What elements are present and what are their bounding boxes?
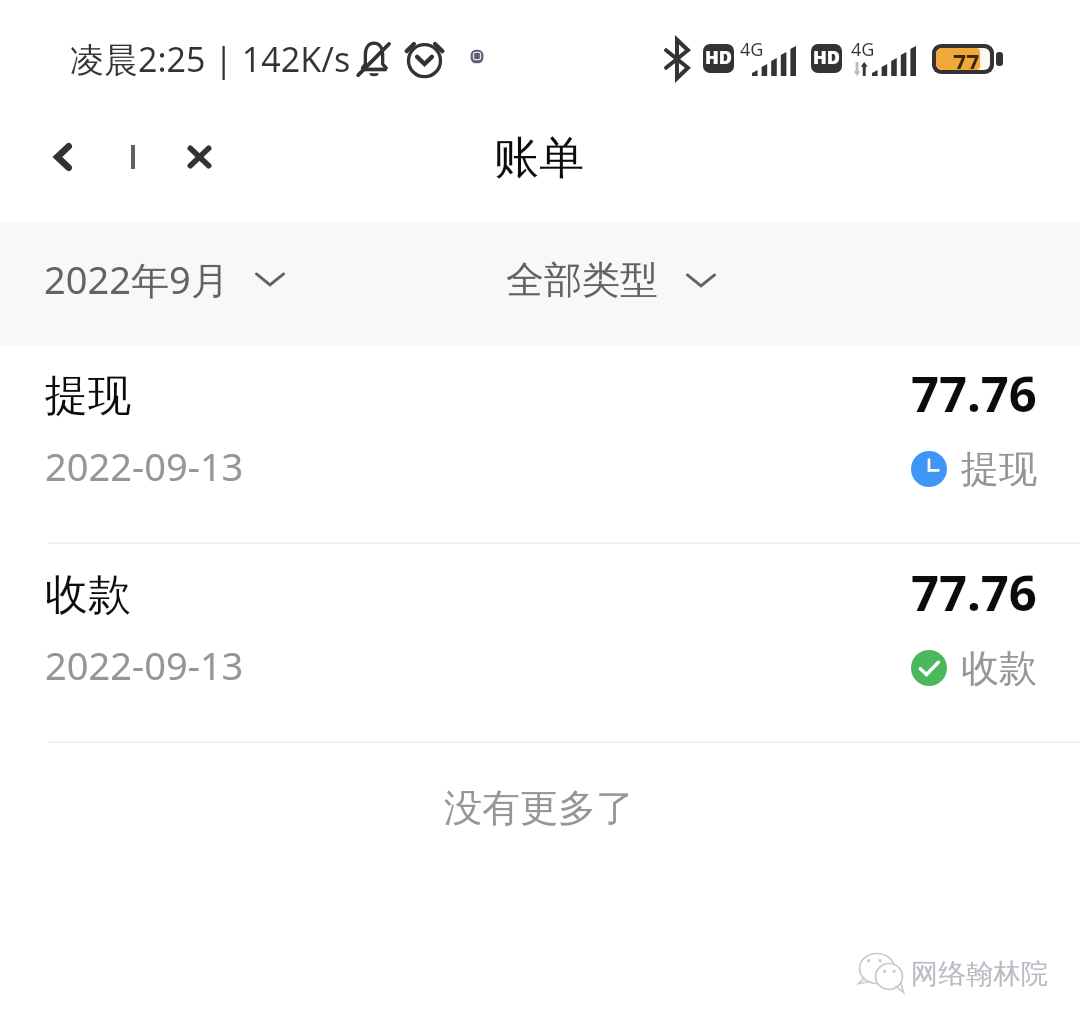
staticText: 凌晨2:25 | 142K/s [70, 36, 351, 82]
staticText: 提现 [45, 369, 131, 423]
staticText: 2022-09-13 [45, 639, 244, 691]
staticText: 77.76 [911, 360, 1037, 427]
staticText: 收款 [961, 644, 1037, 692]
staticText: HD [813, 45, 840, 70]
button[interactable]: Back [27, 121, 99, 193]
button[interactable]: 全部类型 [492, 241, 732, 317]
button[interactable]: 2022年9月 [30, 238, 301, 318]
staticText: 77.76 [911, 559, 1037, 626]
button[interactable]: 收款 [0, 544, 1080, 741]
staticText: 4G [740, 37, 764, 62]
staticText: 2022年9月 [44, 253, 229, 305]
staticText: 77 [953, 48, 980, 69]
staticText: 账单 [494, 130, 584, 187]
staticText: 收款 [45, 568, 131, 622]
button[interactable]: Close [163, 121, 235, 193]
staticText: 全部类型 [506, 256, 658, 304]
button[interactable]: 提现 [0, 345, 1080, 542]
staticText: 4G [851, 37, 875, 62]
staticText: 提现 [961, 445, 1037, 493]
staticText: 没有更多了 [444, 784, 634, 832]
staticText: HD [705, 45, 732, 70]
staticText: 网络翰林院 [911, 957, 1049, 992]
staticText: 2022-09-13 [45, 440, 244, 492]
